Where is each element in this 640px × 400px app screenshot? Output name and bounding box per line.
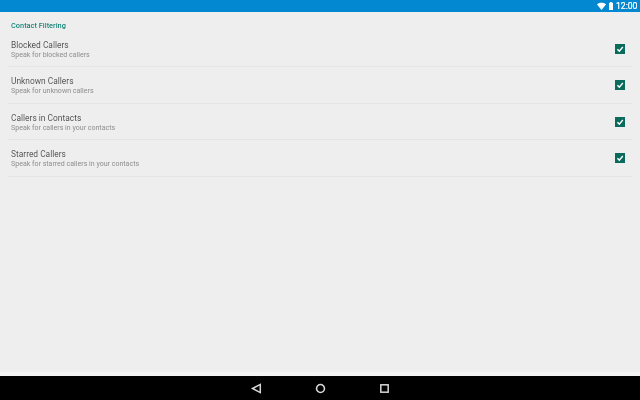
staticText: Speak for blocked callers (11, 50, 90, 58)
button[interactable]: Toggle Blocked Callers (610, 39, 630, 59)
staticText: Starred Callers (11, 149, 66, 159)
button[interactable]: Unknown Callers (0, 67, 640, 103)
staticText: 12:00 (616, 1, 638, 11)
button[interactable]: Toggle Starred Callers (610, 148, 630, 168)
button[interactable]: Toggle Callers in Contacts (610, 112, 630, 132)
button[interactable]: Callers in Contacts (0, 104, 640, 139)
button[interactable]: Toggle Unknown Callers (610, 75, 630, 95)
button[interactable]: Blocked Callers (0, 32, 640, 66)
button[interactable]: Home (296, 376, 344, 400)
button[interactable]: Recent apps (360, 376, 408, 400)
staticText: Speak for callers in your contacts (11, 123, 116, 131)
staticText: Speak for unknown callers (11, 86, 94, 94)
staticText: Unknown Callers (11, 76, 74, 86)
button[interactable]: Back (232, 376, 280, 400)
staticText: Blocked Callers (11, 40, 69, 50)
staticText: Speak for starred callers in your contac… (11, 159, 140, 167)
staticText: Callers in Contacts (11, 113, 82, 123)
staticText: Contact Filtering (11, 21, 66, 30)
button[interactable]: Starred Callers (0, 140, 640, 176)
